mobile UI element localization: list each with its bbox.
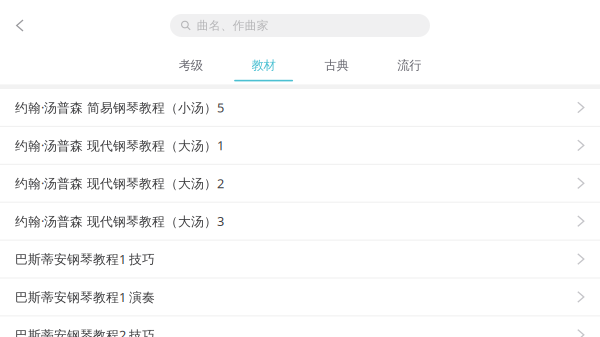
button[interactable]: 约翰·汤普森 现代钢琴教程（大汤）2 xyxy=(0,165,600,203)
button[interactable]: 古典 xyxy=(300,56,373,84)
staticText: 曲名、作曲家 xyxy=(197,18,269,33)
staticText: 约翰·汤普森 现代钢琴教程（大汤）3 xyxy=(15,212,224,230)
staticText: 流行 xyxy=(397,57,421,73)
staticText: 约翰·汤普森 现代钢琴教程（大汤）2 xyxy=(15,174,224,192)
button[interactable]: 教材 xyxy=(227,56,300,84)
staticText: 巴斯蒂安钢琴教程1 技巧 xyxy=(15,250,155,268)
button[interactable]: Back xyxy=(0,14,39,37)
button[interactable]: 流行 xyxy=(373,56,446,84)
staticText: 教材 xyxy=(252,57,276,73)
button[interactable]: 约翰·汤普森 现代钢琴教程（大汤）1 xyxy=(0,127,600,165)
staticText: 考级 xyxy=(179,57,203,73)
button[interactable]: 曲名、作曲家 xyxy=(170,14,430,37)
button[interactable]: 巴斯蒂安钢琴教程2 技巧 xyxy=(0,316,600,337)
staticText: 古典 xyxy=(324,57,348,73)
button[interactable]: 约翰·汤普森 现代钢琴教程（大汤）3 xyxy=(0,203,600,241)
button[interactable]: 约翰·汤普森 简易钢琴教程（小汤）5 xyxy=(0,89,600,127)
staticText: 巴斯蒂安钢琴教程2 技巧 xyxy=(15,326,155,337)
button[interactable]: 巴斯蒂安钢琴教程1 技巧 xyxy=(0,241,600,278)
button[interactable]: 巴斯蒂安钢琴教程1 演奏 xyxy=(0,278,600,316)
staticText: 约翰·汤普森 简易钢琴教程（小汤）5 xyxy=(15,99,224,116)
button[interactable]: 考级 xyxy=(154,56,227,84)
staticText: 巴斯蒂安钢琴教程1 演奏 xyxy=(15,288,155,306)
staticText: 约翰·汤普森 现代钢琴教程（大汤）1 xyxy=(15,137,224,154)
